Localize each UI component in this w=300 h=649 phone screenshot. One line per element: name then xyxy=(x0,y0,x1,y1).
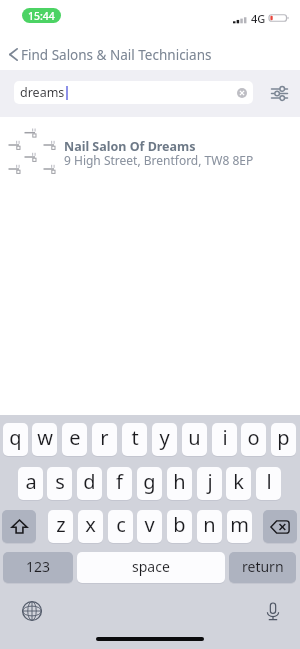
button[interactable]: dreams xyxy=(14,81,253,104)
button[interactable]: j xyxy=(197,467,222,500)
staticText: 4G xyxy=(251,11,266,26)
button[interactable]: a xyxy=(18,467,43,500)
staticText: h xyxy=(173,468,186,495)
staticText: Find Salons & Nail Technicians xyxy=(21,46,212,64)
button[interactable]: Back xyxy=(3,40,23,68)
button[interactable]: Filter xyxy=(264,78,294,108)
button[interactable]: f xyxy=(107,467,132,500)
button[interactable]: Voice input xyxy=(263,601,283,621)
staticText: y xyxy=(159,424,170,451)
staticText: Nail Salon Of Dreams xyxy=(64,138,196,155)
button[interactable]: Switch keyboard language xyxy=(22,601,42,621)
button[interactable]: g xyxy=(137,467,162,500)
staticText: v xyxy=(144,511,155,538)
staticText: a xyxy=(25,468,37,495)
button[interactable]: Shift xyxy=(2,510,36,543)
button[interactable]: i xyxy=(212,423,237,456)
button[interactable]: x xyxy=(78,510,103,543)
button[interactable]: Time, location active xyxy=(22,8,61,23)
button[interactable]: l xyxy=(256,467,281,500)
button[interactable]: c xyxy=(108,510,133,543)
staticText: b xyxy=(173,511,186,538)
staticText: f xyxy=(116,468,123,495)
button[interactable]: r xyxy=(92,423,117,456)
button[interactable]: w xyxy=(32,423,57,456)
button[interactable]: v xyxy=(137,510,162,543)
staticText: return xyxy=(242,557,284,576)
staticText: c xyxy=(116,511,126,538)
button[interactable]: e xyxy=(62,423,87,456)
button[interactable]: k xyxy=(226,467,251,500)
button[interactable]: z xyxy=(48,510,73,543)
button[interactable]: Backspace xyxy=(263,510,297,543)
button[interactable]: p xyxy=(271,423,296,456)
staticText: n xyxy=(203,511,216,538)
staticText: s xyxy=(55,468,65,495)
staticText: d xyxy=(83,468,96,495)
button[interactable]: return xyxy=(229,552,296,583)
button[interactable]: b xyxy=(167,510,192,543)
button[interactable]: u xyxy=(182,423,207,456)
staticText: i xyxy=(222,424,228,451)
button[interactable]: n xyxy=(197,510,222,543)
staticText: u xyxy=(188,424,201,451)
button[interactable]: space xyxy=(77,552,225,583)
staticText: w xyxy=(37,424,53,451)
staticText: p xyxy=(277,424,290,451)
button[interactable]: t xyxy=(122,423,147,456)
staticText: 123 xyxy=(26,557,51,576)
staticText: o xyxy=(247,424,260,451)
staticText: q xyxy=(9,424,22,451)
button[interactable]: h xyxy=(167,467,192,500)
staticText: l xyxy=(266,468,272,495)
button[interactable]: 123 xyxy=(3,552,73,583)
staticText: 9 High Street, Brentford, TW8 8EP xyxy=(64,152,254,168)
staticText: r xyxy=(100,424,109,451)
button[interactable]: m xyxy=(227,510,252,543)
staticText: dreams xyxy=(20,84,65,101)
button[interactable]: o xyxy=(241,423,266,456)
button[interactable]: s xyxy=(47,467,72,500)
staticText: g xyxy=(143,468,156,495)
staticText: m xyxy=(230,511,249,538)
button[interactable]: d xyxy=(77,467,102,500)
button[interactable]: q xyxy=(3,423,28,456)
staticText: z xyxy=(56,511,66,538)
staticText: space xyxy=(132,557,170,576)
staticText: t xyxy=(131,424,139,451)
button[interactable]: Nail Salon Of Dreams xyxy=(0,117,300,179)
staticText: x xyxy=(85,511,96,538)
button[interactable]: y xyxy=(152,423,177,456)
button[interactable]: Clear text xyxy=(232,83,252,103)
staticText: j xyxy=(207,468,213,495)
staticText: k xyxy=(233,468,244,495)
staticText: e xyxy=(69,424,81,451)
staticText: 15:44 xyxy=(28,9,55,23)
